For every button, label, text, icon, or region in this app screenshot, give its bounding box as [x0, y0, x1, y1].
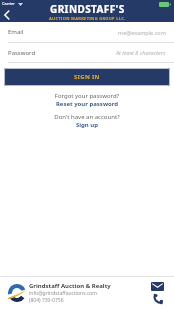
staticText: info@grindstaffauctions.com [29, 290, 98, 297]
staticText: me@example.com [118, 29, 166, 36]
staticText: GRINDSTAFF'S [50, 2, 125, 16]
staticText: Don't have an account? [0, 113, 174, 121]
staticText: SIGN IN [74, 73, 100, 81]
staticText: AUCTION MARKETING GROUP LLC. [49, 16, 126, 21]
button[interactable]: Sign up [0, 121, 174, 129]
staticText: Grindstaff Auction & Realty [29, 282, 111, 290]
button[interactable]: SIGN IN [4, 68, 170, 86]
button[interactable] [153, 294, 163, 304]
staticText: Email [8, 28, 24, 36]
staticText: Password [8, 49, 36, 57]
button[interactable]: Reset your password [0, 100, 174, 108]
staticText: Carrier [2, 1, 16, 6]
staticText: Forgot your password? [0, 92, 174, 100]
staticText: At least 8 characters [116, 49, 166, 56]
button[interactable] [4, 11, 10, 19]
button[interactable] [151, 282, 164, 291]
staticText: (804) 730-0756 [29, 297, 64, 304]
